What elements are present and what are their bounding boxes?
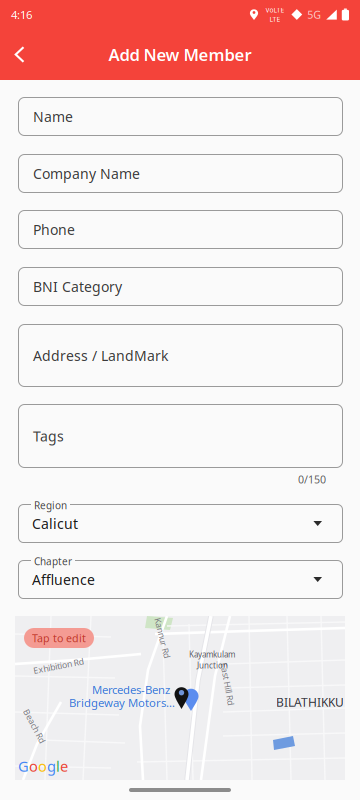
button[interactable]: Affluence — [18, 553, 343, 598]
staticText: Beach Rd — [16, 720, 53, 732]
button[interactable]: Tap to edit — [24, 628, 94, 648]
staticText: Calicut — [32, 514, 78, 533]
button[interactable]: Name — [18, 97, 343, 136]
staticText: e — [60, 756, 68, 776]
button[interactable]: Company Name — [18, 154, 343, 193]
staticText: Region — [34, 498, 67, 512]
button[interactable]: Calicut — [18, 497, 343, 542]
staticText: o — [29, 756, 38, 776]
staticText: Add New Member — [108, 43, 251, 66]
staticText: Address / LandMark — [33, 346, 168, 365]
staticText: Tap to edit — [32, 631, 86, 645]
staticText: o — [38, 756, 47, 776]
staticText: Company Name — [33, 164, 140, 183]
staticText: Chapter — [34, 554, 72, 568]
button[interactable]: BNI Category — [18, 267, 343, 306]
button[interactable]: Phone — [18, 210, 343, 249]
staticText: Kayamkulam — [189, 649, 235, 660]
staticText: VoLTE — [265, 5, 284, 14]
button[interactable]: Address / LandMark — [18, 324, 343, 387]
staticText: Affluence — [32, 570, 95, 589]
staticText: G — [18, 756, 29, 776]
staticText: 4:16 — [11, 7, 32, 22]
staticText: Name — [33, 107, 73, 126]
staticText: g — [47, 756, 56, 776]
staticText: Junction — [197, 660, 228, 671]
staticText: Kannur Rd — [142, 632, 183, 644]
staticText: l — [56, 756, 60, 776]
staticText: 5G — [307, 7, 321, 22]
staticText: East Hill Rd — [206, 678, 249, 690]
staticText: Exhibition Rd — [33, 660, 84, 672]
staticText: Bridgeway Motors… — [69, 695, 175, 710]
button[interactable]: Back — [0, 29, 37, 80]
button[interactable]: Tags — [18, 404, 343, 468]
staticText: BILATHIKKU — [276, 694, 344, 710]
staticText: Tags — [33, 426, 64, 446]
staticText: Mercedes-Benz — [92, 682, 170, 697]
staticText: Phone — [33, 220, 75, 239]
staticText: 0/150 — [298, 472, 326, 486]
staticText: BNI Category — [33, 277, 122, 296]
staticText: LTE — [269, 14, 280, 24]
